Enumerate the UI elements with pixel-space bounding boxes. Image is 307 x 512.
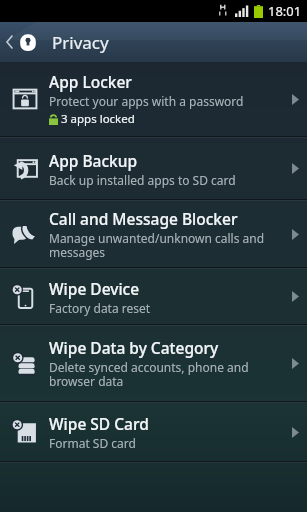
other: Back — [4, 32, 16, 52]
staticText: Protect your apps with a password — [49, 93, 244, 109]
button[interactable]: Wipe Data by Category — [0, 326, 307, 401]
button[interactable]: Wipe SD Card — [0, 403, 307, 461]
staticText: Wipe SD Card — [49, 413, 149, 434]
button[interactable]: Call and Message Blocker — [0, 201, 307, 267]
button[interactable]: App Backup — [0, 138, 307, 199]
button[interactable]: Wipe Device — [0, 269, 307, 324]
staticText: 3 apps locked — [61, 111, 135, 127]
staticText: Wipe Device — [49, 278, 140, 299]
staticText: Call and Message Blocker — [49, 208, 238, 229]
staticText: Privacy — [52, 31, 109, 54]
staticText: Back up installed apps to SD card — [49, 172, 236, 188]
staticText: Manage unwanted/unknown calls and messag… — [49, 230, 277, 261]
staticText: App Locker — [49, 71, 132, 92]
button[interactable]: Back — [0, 22, 307, 62]
staticText: Wipe Data by Category — [49, 337, 219, 358]
button[interactable]: App Locker — [0, 62, 307, 136]
staticText: Delete synced accounts, phone and browse… — [49, 359, 277, 390]
staticText: Factory data reset — [49, 300, 151, 316]
staticText: 18:01 — [268, 2, 302, 20]
staticText: Format SD card — [49, 435, 136, 451]
staticText: App Backup — [49, 150, 138, 171]
